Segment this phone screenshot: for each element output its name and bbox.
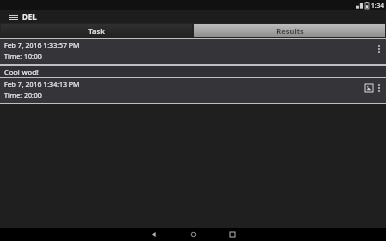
button[interactable]: Feb 7, 2016 1:34:13 PM [0,78,386,103]
button[interactable]: Recent apps [219,228,245,241]
button[interactable]: Back [141,228,167,241]
button[interactable]: View photo [363,82,374,93]
button[interactable]: More options [374,81,384,94]
staticText: Time: 20:00 [4,91,42,101]
staticText: Results [276,26,304,36]
button[interactable]: Cool wod! [0,66,386,77]
button[interactable]: Task [1,24,192,37]
button[interactable]: Results [194,24,385,37]
staticText: DEL [22,11,37,22]
button[interactable]: Feb 7, 2016 1:33:57 PM [0,39,386,64]
staticText: Time: 10:00 [4,52,42,62]
button[interactable]: More options [374,42,384,55]
staticText: Cool wod! [4,67,39,77]
staticText: 1:34 [371,1,384,10]
staticText: Feb 7, 2016 1:34:13 PM [4,80,80,90]
staticText: Feb 7, 2016 1:33:57 PM [4,41,80,51]
button[interactable]: Home [180,228,206,241]
button[interactable]: Open navigation drawer [7,11,19,23]
staticText: Task [88,26,105,36]
